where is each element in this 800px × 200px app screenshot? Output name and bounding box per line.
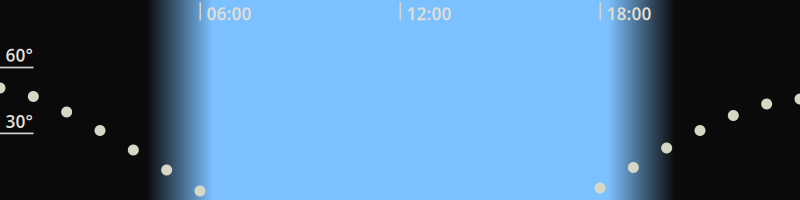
staticText: 60° [5, 44, 32, 67]
staticText: 06:00 [207, 2, 252, 25]
staticText: 12:00 [407, 2, 452, 25]
staticText: 18:00 [607, 2, 652, 25]
staticText: 30° [5, 110, 32, 133]
